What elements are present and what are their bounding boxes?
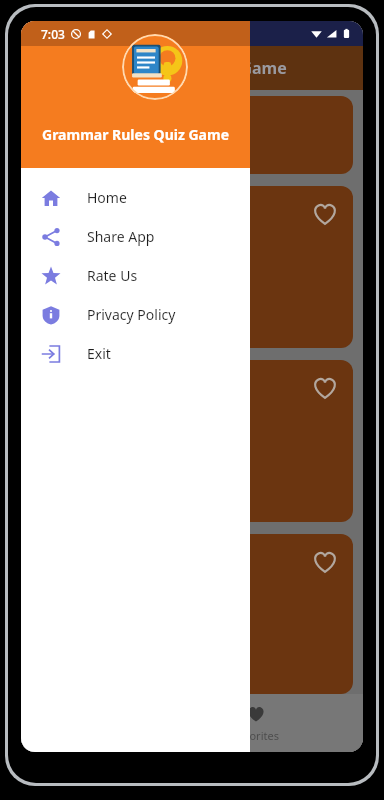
button[interactable]: Favorite bbox=[311, 548, 339, 576]
staticText: Grammar Rules Quiz Game bbox=[42, 125, 229, 144]
staticText: 7:03 bbox=[41, 26, 65, 42]
staticText: Conjunsions bbox=[43, 270, 159, 296]
staticText: 10 Questions bbox=[57, 309, 138, 327]
staticText: Grammar Rules Quiz Game bbox=[73, 57, 287, 79]
staticText: 10 Questions bbox=[57, 135, 138, 153]
staticText: Favorites bbox=[232, 728, 279, 743]
button[interactable]: Favorite bbox=[31, 186, 353, 348]
button[interactable]: Privacy Policy bbox=[21, 295, 250, 334]
button[interactable]: Share App bbox=[21, 217, 250, 256]
staticText: Rate Us bbox=[87, 266, 138, 285]
button[interactable]: Adjectives bbox=[31, 96, 353, 174]
button[interactable]: Favorite bbox=[311, 374, 339, 402]
staticText: Privacy Policy bbox=[87, 305, 176, 324]
button[interactable]: Favorite bbox=[31, 360, 353, 522]
button[interactable]: Exit bbox=[21, 334, 250, 373]
staticText: Share App bbox=[87, 227, 155, 246]
button[interactable]: Home bbox=[21, 178, 250, 217]
button[interactable]: Rate Us bbox=[21, 256, 250, 295]
button[interactable]: Favorites bbox=[220, 698, 291, 749]
staticText: Home bbox=[87, 188, 127, 207]
staticText: Exit bbox=[87, 344, 111, 363]
button[interactable]: Favorite bbox=[311, 200, 339, 228]
button[interactable]: Favorite bbox=[31, 534, 353, 694]
